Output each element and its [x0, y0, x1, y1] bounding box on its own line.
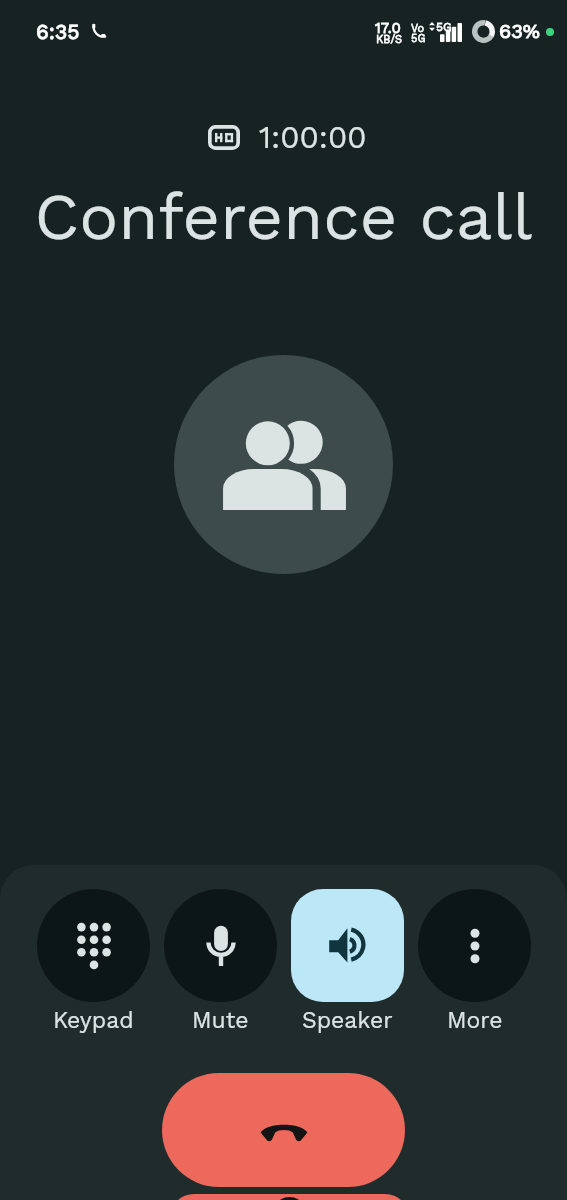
button[interactable]: Keypad — [37, 889, 150, 1034]
button[interactable]: Speaker — [291, 889, 404, 1034]
staticText: 63% — [499, 19, 540, 42]
staticText: 5G — [411, 32, 426, 45]
staticText: KB/S — [376, 33, 403, 46]
button[interactable]: Mute — [164, 889, 277, 1034]
staticText: 6:35 — [36, 19, 80, 44]
staticText: Speaker — [302, 1007, 393, 1034]
staticText: More — [447, 1007, 503, 1034]
staticText: 5G — [436, 20, 452, 34]
button[interactable]: More — [418, 889, 531, 1034]
staticText: Vo — [411, 22, 425, 35]
staticText: Keypad — [53, 1007, 134, 1034]
staticText: 17.0 — [375, 19, 401, 37]
staticText: Mute — [192, 1007, 249, 1034]
staticText: 1:00:00 — [259, 119, 367, 155]
staticText: Conference call — [0, 179, 567, 255]
button[interactable]: End call — [162, 1073, 405, 1187]
